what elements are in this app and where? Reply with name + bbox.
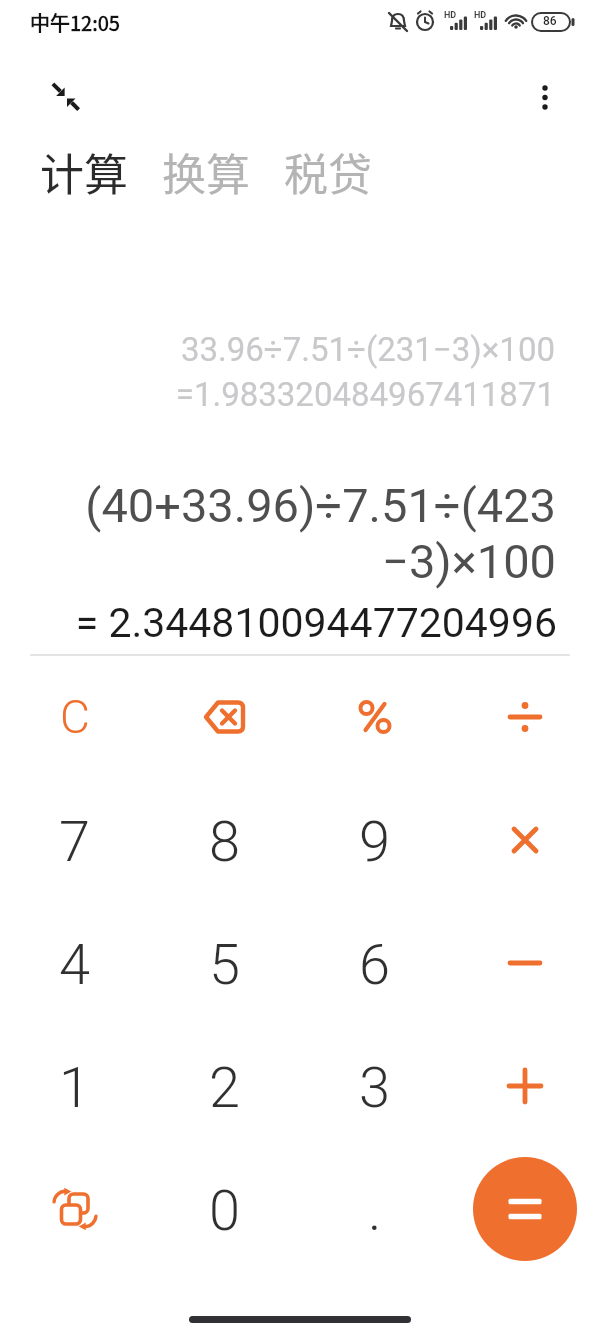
staticText: 2 — [209, 1055, 241, 1121]
button[interactable]: 换算 — [162, 140, 250, 204]
staticText: HD — [474, 10, 487, 21]
staticText: C — [60, 690, 90, 744]
button[interactable]: . — [320, 1154, 430, 1264]
button[interactable]: 4 — [20, 908, 130, 1018]
staticText: = 2.344810094477204996 — [75, 599, 557, 647]
button[interactable] — [320, 662, 430, 772]
staticText: 9 — [359, 809, 391, 875]
button[interactable]: 2 — [170, 1031, 280, 1141]
staticText: =1.983320484967411871 — [175, 375, 555, 414]
staticText: HD — [444, 10, 457, 21]
staticText: 1 — [59, 1055, 91, 1121]
button[interactable]: 8 — [170, 785, 280, 895]
staticText: . — [368, 1178, 382, 1244]
button[interactable] — [473, 1157, 577, 1261]
button[interactable] — [470, 662, 580, 772]
button[interactable] — [470, 785, 580, 895]
button[interactable]: 0 — [170, 1154, 280, 1264]
button[interactable] — [40, 73, 88, 121]
staticText: 33.96÷7.51÷(231−3)×100 — [180, 330, 555, 369]
staticText: 中午12:05 — [30, 8, 120, 37]
button[interactable] — [470, 908, 580, 1018]
staticText: (40+33.96)÷7.51÷(423 −3)×100 — [85, 478, 556, 590]
staticText: 7 — [59, 809, 91, 875]
button[interactable] — [20, 1154, 130, 1264]
staticText: 5 — [209, 932, 241, 998]
button[interactable]: 5 — [170, 908, 280, 1018]
staticText: 8 — [209, 809, 241, 875]
staticText: 税贷 — [284, 140, 372, 204]
button[interactable]: C — [20, 662, 130, 772]
button[interactable]: 3 — [320, 1031, 430, 1141]
button[interactable]: 7 — [20, 785, 130, 895]
button[interactable]: 6 — [320, 908, 430, 1018]
staticText: 4 — [59, 932, 91, 998]
staticText: 6 — [359, 932, 391, 998]
staticText: 计算 — [40, 140, 128, 204]
button[interactable]: 税贷 — [284, 140, 372, 204]
button[interactable] — [523, 73, 567, 121]
button[interactable]: 9 — [320, 785, 430, 895]
button[interactable]: 计算 — [40, 140, 128, 204]
staticText: 0 — [209, 1178, 241, 1244]
staticText: 3 — [359, 1055, 391, 1121]
button[interactable]: 1 — [20, 1031, 130, 1141]
button[interactable] — [170, 662, 280, 772]
button[interactable] — [470, 1031, 580, 1141]
staticText: 换算 — [162, 140, 250, 204]
staticText: 86 — [543, 14, 557, 28]
